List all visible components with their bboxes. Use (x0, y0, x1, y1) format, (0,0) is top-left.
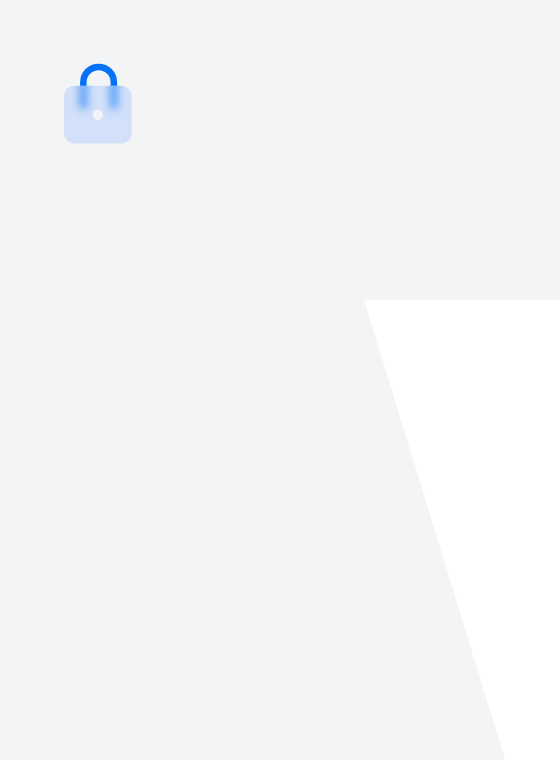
button[interactable]: Locked (56, 55, 140, 151)
